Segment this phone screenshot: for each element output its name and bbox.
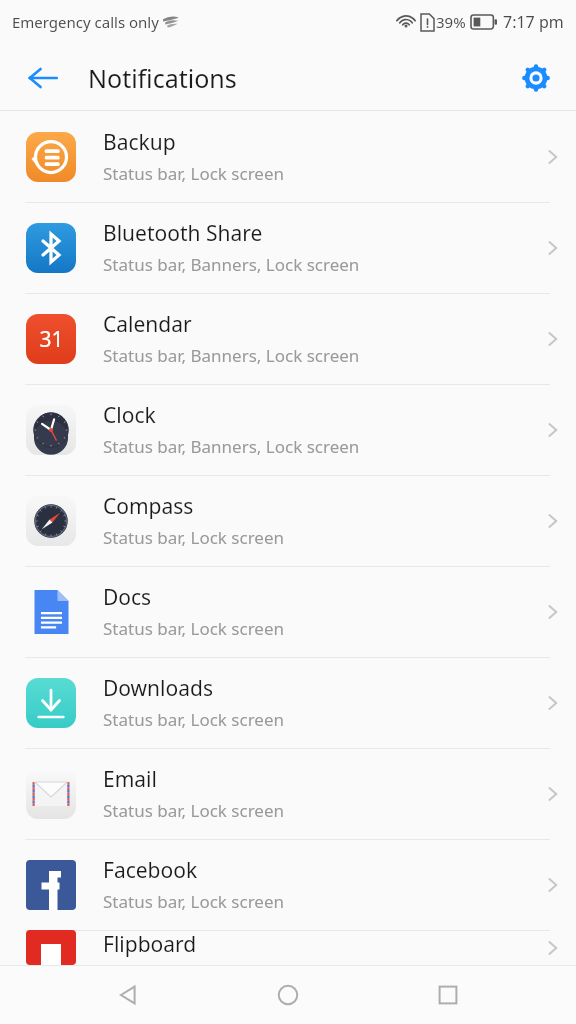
button[interactable]: Back: [14, 49, 72, 107]
button[interactable]: Compass: [0, 475, 576, 566]
button[interactable]: Recent apps: [416, 965, 480, 1024]
staticText: Emergency calls only: [12, 12, 159, 32]
staticText: Notifications: [88, 61, 237, 95]
button[interactable]: Settings: [508, 50, 564, 106]
button[interactable]: Bluetooth Share: [0, 202, 576, 293]
staticText: Backup: [103, 128, 176, 157]
button[interactable]: Downloads: [0, 657, 576, 748]
staticText: 39%: [436, 12, 466, 32]
button[interactable]: Clock: [0, 384, 576, 475]
staticText: 7:17 pm: [503, 11, 564, 33]
button[interactable]: Email: [0, 748, 576, 839]
staticText: Facebook: [103, 856, 198, 885]
staticText: Status bar, Banners, Lock screen: [103, 344, 360, 367]
staticText: Email: [103, 765, 157, 794]
staticText: Flipboard: [103, 930, 197, 959]
staticText: Downloads: [103, 674, 213, 703]
staticText: Status bar, Banners, Lock screen: [103, 253, 360, 276]
button[interactable]: Facebook: [0, 839, 576, 930]
staticText: Status bar, Lock screen: [103, 526, 284, 549]
button[interactable]: Backup: [0, 111, 576, 202]
staticText: Compass: [103, 492, 194, 521]
button[interactable]: Flipboard: [0, 930, 576, 965]
button[interactable]: Docs: [0, 566, 576, 657]
staticText: Status bar, Lock screen: [103, 162, 284, 185]
staticText: Clock: [103, 401, 156, 430]
button[interactable]: Back: [96, 965, 160, 1024]
staticText: Status bar, Lock screen: [103, 708, 284, 731]
staticText: Status bar, Lock screen: [103, 799, 284, 822]
staticText: Status bar, Lock screen: [103, 617, 284, 640]
staticText: Docs: [103, 583, 152, 612]
staticText: Status bar, Lock screen: [103, 890, 284, 913]
button[interactable]: 31: [0, 293, 576, 384]
staticText: Bluetooth Share: [103, 219, 263, 248]
staticText: Calendar: [103, 310, 192, 339]
staticText: 31: [39, 325, 64, 354]
button[interactable]: Home: [256, 965, 320, 1024]
staticText: Status bar, Banners, Lock screen: [103, 435, 360, 458]
